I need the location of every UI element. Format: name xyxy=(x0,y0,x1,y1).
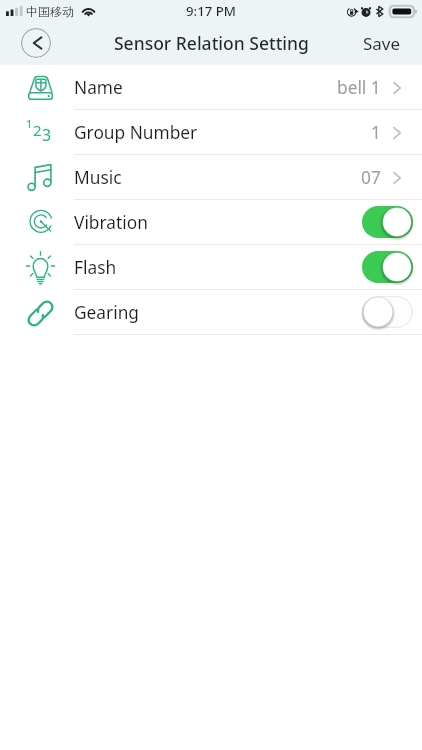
button[interactable]: Flash xyxy=(0,245,422,290)
button[interactable]: Music xyxy=(0,155,422,200)
staticText: Gearing xyxy=(74,301,139,325)
staticText: Group Number xyxy=(74,121,198,145)
staticText: 中国移动 xyxy=(26,4,74,19)
staticText: Sensor Relation Setting xyxy=(114,31,309,55)
staticText: 1 xyxy=(371,121,381,145)
staticText: Flash xyxy=(74,256,117,280)
staticText: 9:17 PM xyxy=(186,2,236,20)
button[interactable]: Gearing xyxy=(0,290,422,335)
staticText: 07 xyxy=(361,166,381,190)
button[interactable]: Back xyxy=(21,28,51,58)
button[interactable]: Vibration xyxy=(0,200,422,245)
staticText: Vibration xyxy=(74,211,148,235)
button[interactable]: Toggle on xyxy=(362,206,413,238)
button[interactable]: Toggle off xyxy=(362,296,413,328)
button[interactable]: Toggle on xyxy=(362,251,413,283)
button[interactable]: Save xyxy=(349,23,422,62)
staticText: 2 xyxy=(33,120,42,140)
button[interactable]: 1 xyxy=(0,110,422,155)
staticText: bell 1 xyxy=(337,76,381,100)
staticText: Name xyxy=(74,76,123,100)
staticText: Save xyxy=(363,32,401,53)
staticText: 3 xyxy=(42,124,52,146)
button[interactable]: Name xyxy=(0,65,422,110)
staticText: Music xyxy=(74,166,122,190)
staticText: 1 xyxy=(26,116,33,132)
